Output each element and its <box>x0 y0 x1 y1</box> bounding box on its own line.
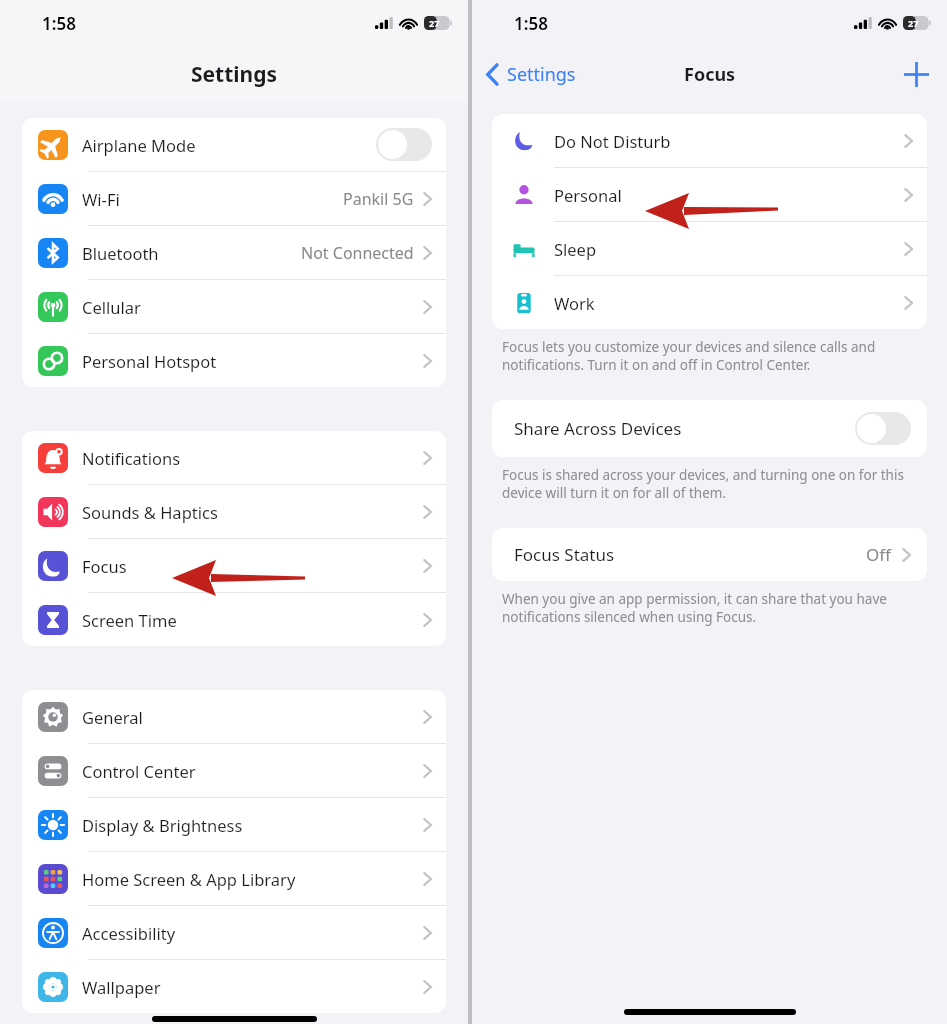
button[interactable]: Settings <box>472 54 588 95</box>
staticText: Home Screen & App Library <box>82 868 296 890</box>
staticText: Work <box>554 292 595 314</box>
button[interactable]: Personal Hotspot <box>22 334 446 387</box>
staticText: Settings <box>507 62 576 87</box>
button[interactable]: Focus Status <box>492 528 927 581</box>
staticText: 27 <box>908 17 919 29</box>
button[interactable]: Add Focus <box>886 50 947 99</box>
staticText: Wallpaper <box>82 976 161 998</box>
staticText: Focus is shared across your devices, and… <box>502 466 921 502</box>
button[interactable]: Notifications <box>22 431 446 484</box>
staticText: Airplane Mode <box>82 134 196 156</box>
button[interactable]: Personal <box>492 168 927 221</box>
staticText: 27 <box>429 17 440 29</box>
staticText: Focus lets you customize your devices an… <box>502 338 921 374</box>
staticText: Bluetooth <box>82 242 159 264</box>
staticText: Wi-Fi <box>82 188 120 210</box>
staticText: Share Across Devices <box>514 417 682 440</box>
staticText: Focus Status <box>514 543 615 566</box>
button[interactable]: Sounds & Haptics <box>22 485 446 538</box>
staticText: Notifications <box>82 447 181 469</box>
staticText: Personal Hotspot <box>82 350 217 372</box>
staticText: Cellular <box>82 296 141 318</box>
staticText: Off <box>866 543 891 566</box>
staticText: Focus <box>82 555 127 577</box>
staticText: Sleep <box>554 238 597 260</box>
staticText: Pankil 5G <box>343 188 414 210</box>
button[interactable]: Wi-Fi <box>22 172 446 225</box>
button[interactable]: Cellular <box>22 280 446 333</box>
button[interactable]: Share Across Devices <box>492 400 927 457</box>
button[interactable]: Wallpaper <box>22 960 446 1013</box>
button[interactable]: Focus <box>22 539 446 592</box>
button[interactable]: Home Screen & App Library <box>22 852 446 905</box>
button[interactable]: Control Center <box>22 744 446 797</box>
button[interactable]: Do Not Disturb <box>492 114 927 167</box>
button[interactable]: General <box>22 690 446 743</box>
button[interactable]: Toggle off <box>855 412 911 445</box>
button[interactable]: Screen Time <box>22 593 446 646</box>
staticText: Sounds & Haptics <box>82 501 218 523</box>
staticText: When you give an app permission, it can … <box>502 590 921 626</box>
staticText: Not Connected <box>301 242 414 264</box>
button[interactable]: Toggle off <box>376 128 432 161</box>
button[interactable]: Display & Brightness <box>22 798 446 851</box>
staticText: 1:58 <box>42 12 76 35</box>
staticText: Do Not Disturb <box>554 130 671 152</box>
staticText: General <box>82 706 143 728</box>
staticText: Control Center <box>82 760 196 782</box>
staticText: Settings <box>191 60 278 89</box>
staticText: Focus <box>684 62 736 87</box>
button[interactable]: Work <box>492 276 927 329</box>
staticText: Accessibility <box>82 922 176 944</box>
button[interactable]: Accessibility <box>22 906 446 959</box>
staticText: Display & Brightness <box>82 814 243 836</box>
button[interactable]: Bluetooth <box>22 226 446 279</box>
button[interactable]: Sleep <box>492 222 927 275</box>
button[interactable]: Airplane Mode <box>22 118 446 171</box>
staticText: Screen Time <box>82 609 177 631</box>
staticText: Personal <box>554 184 622 206</box>
staticText: 1:58 <box>514 12 548 35</box>
